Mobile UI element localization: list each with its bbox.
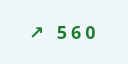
- staticText: ↗ 560: [29, 20, 100, 45]
